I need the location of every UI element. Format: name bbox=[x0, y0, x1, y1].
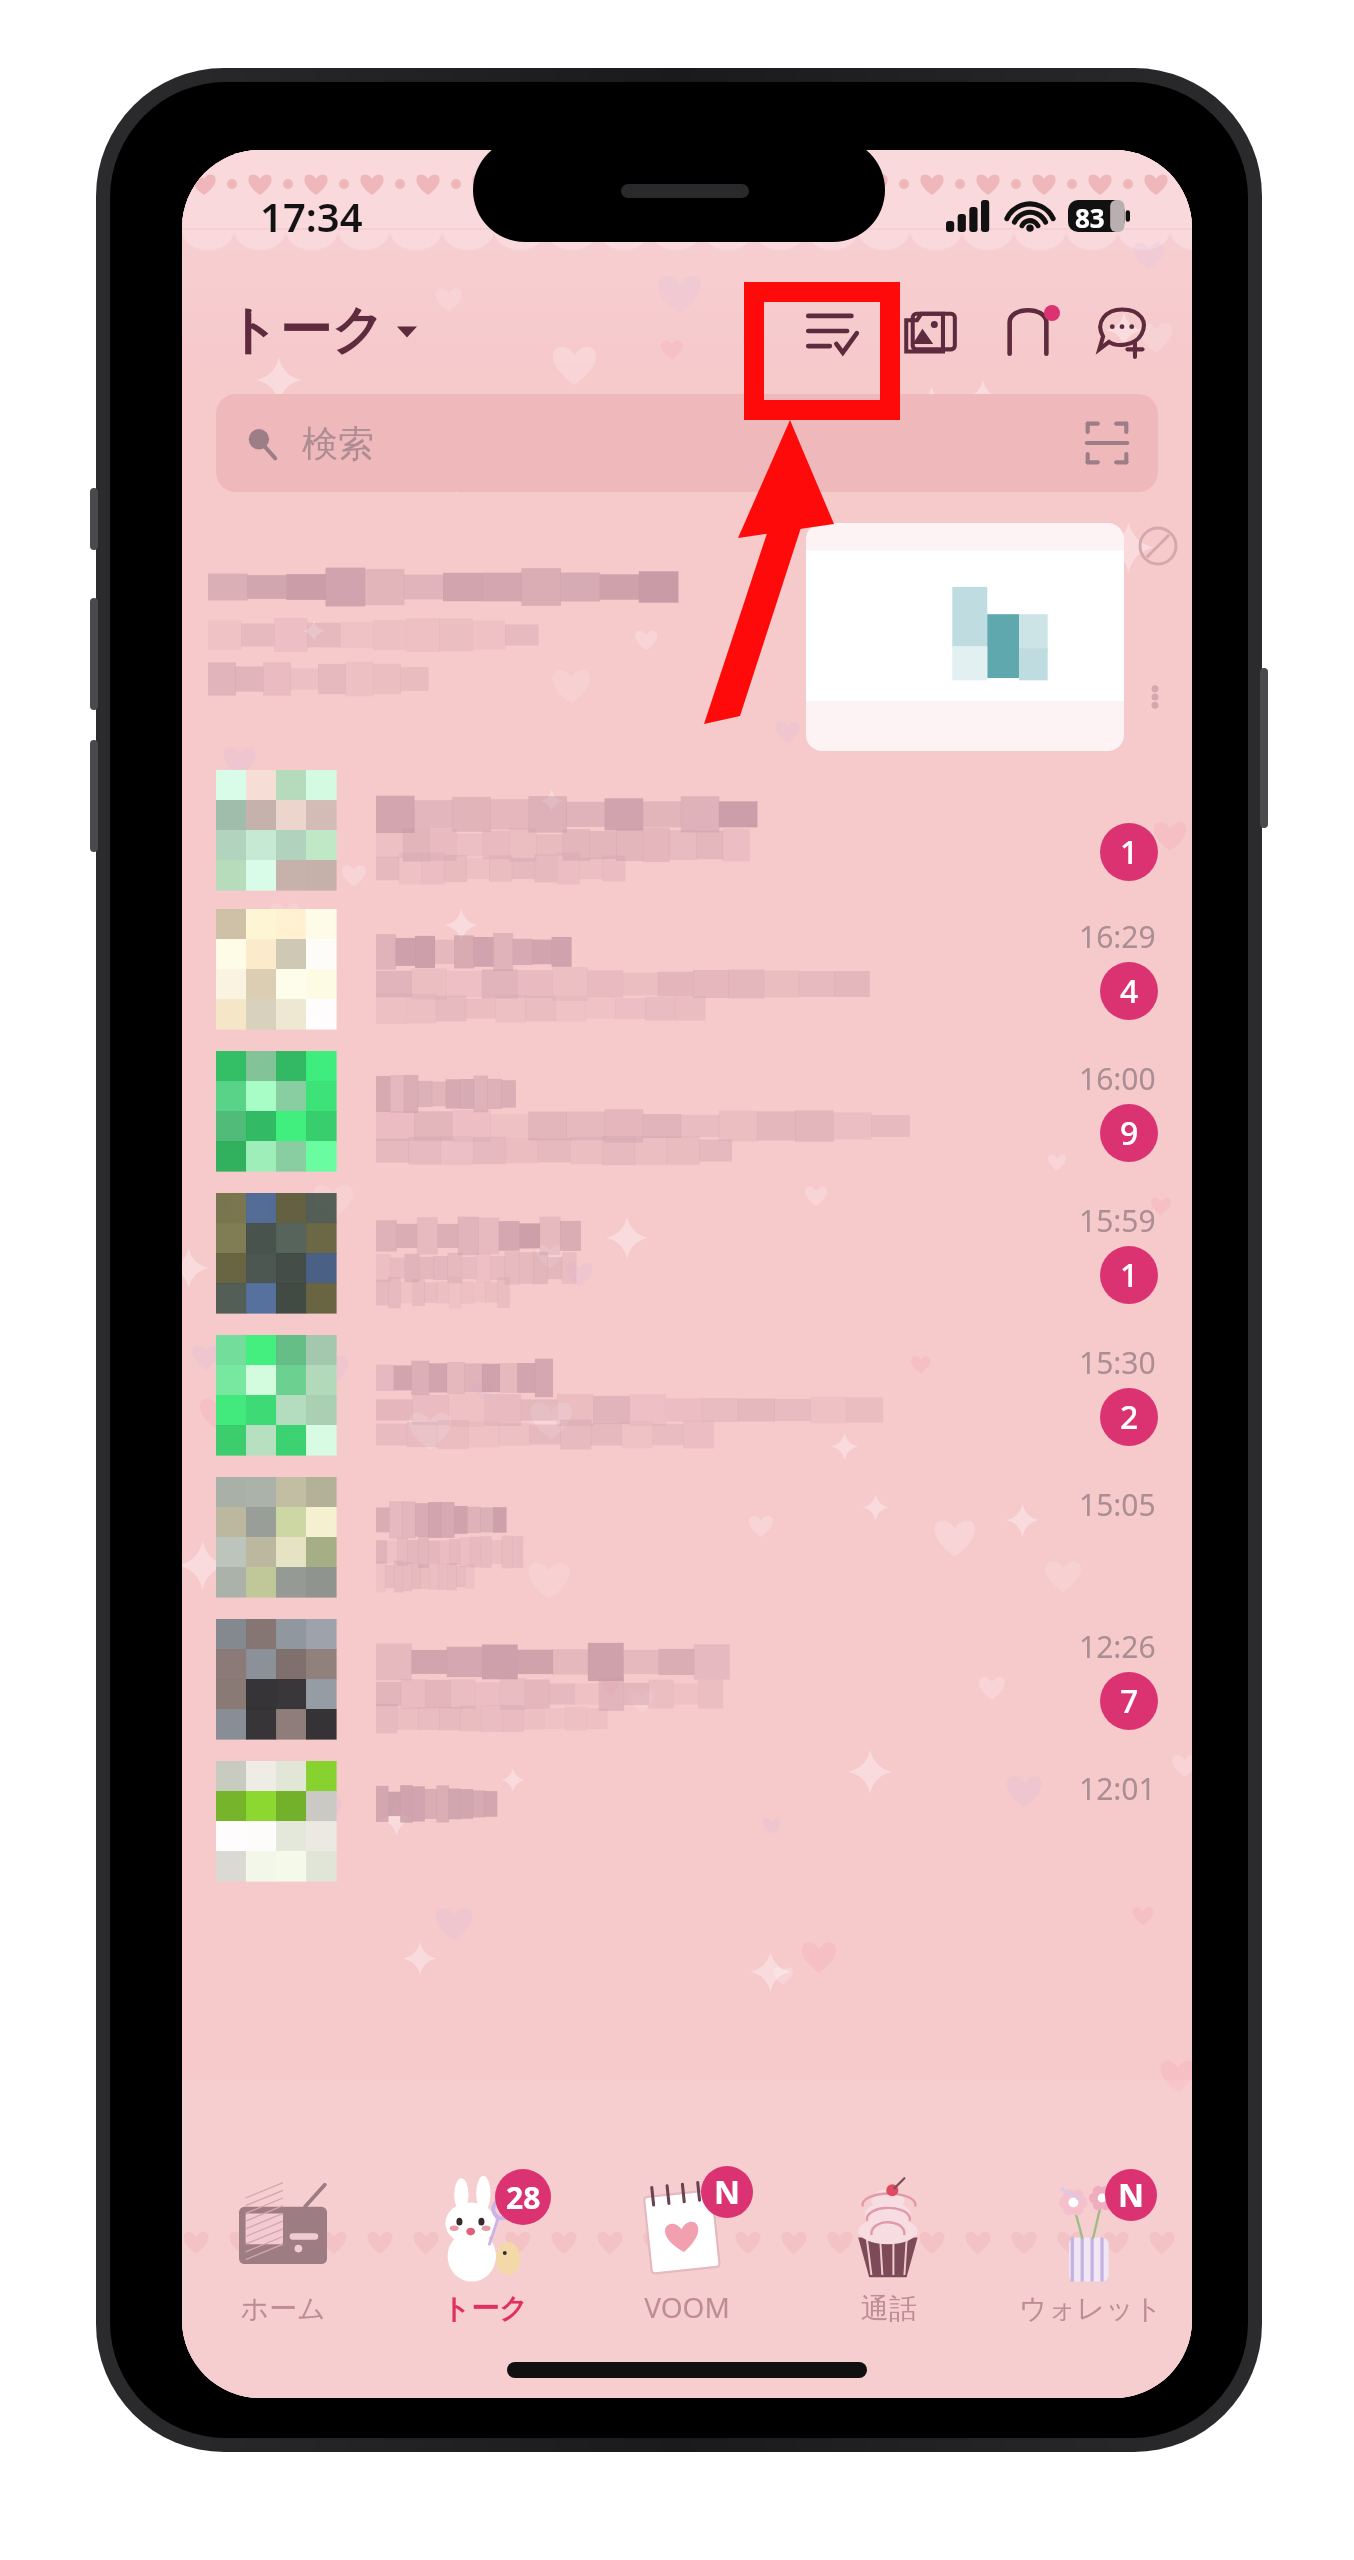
staticText: 通話 bbox=[861, 2291, 917, 2326]
staticText: VOOM bbox=[644, 2288, 730, 2326]
staticText: ウォレット bbox=[1019, 2291, 1163, 2326]
staticText: 15:05 bbox=[1079, 1484, 1156, 1525]
staticText: N bbox=[1118, 2173, 1145, 2217]
staticText: 2 bbox=[1120, 1395, 1139, 1439]
button[interactable]: Hide ad bbox=[1138, 526, 1178, 566]
button[interactable]: Keep memo bbox=[992, 295, 1064, 367]
staticText: 12:01 bbox=[1079, 1768, 1156, 1809]
staticText: 9 bbox=[1120, 1111, 1139, 1155]
button[interactable]: 1 bbox=[182, 762, 1192, 898]
staticText: 16:29 bbox=[1079, 916, 1156, 957]
button[interactable]: 28 bbox=[384, 2130, 586, 2342]
staticText: 15:59 bbox=[1079, 1200, 1156, 1241]
staticText: トーク bbox=[442, 2291, 528, 2326]
staticText: 7 bbox=[1120, 1679, 1139, 1723]
button[interactable]: Albums bbox=[894, 295, 966, 367]
button[interactable] bbox=[806, 523, 1124, 751]
button[interactable]: 12:01 bbox=[182, 1750, 1192, 1892]
button[interactable]: 12:26 bbox=[182, 1608, 1192, 1750]
staticText: 1 bbox=[1120, 830, 1139, 874]
button[interactable]: N bbox=[586, 2130, 788, 2342]
button[interactable]: More options bbox=[1138, 680, 1172, 714]
staticText: 検索 bbox=[302, 421, 374, 466]
button[interactable]: 15:30 bbox=[182, 1324, 1192, 1466]
button[interactable]: 通話 bbox=[788, 2130, 990, 2342]
button[interactable]: ホーム bbox=[182, 2130, 384, 2342]
staticText: 17:34 bbox=[260, 189, 363, 243]
staticText: N bbox=[714, 2170, 741, 2214]
staticText: 28 bbox=[506, 2177, 541, 2218]
button[interactable]: Scan code bbox=[1084, 420, 1130, 466]
button[interactable]: 15:59 bbox=[182, 1182, 1192, 1324]
button[interactable]: 16:00 bbox=[182, 1040, 1192, 1182]
staticText: ホーム bbox=[240, 2291, 326, 2326]
staticText: 15:30 bbox=[1079, 1342, 1156, 1383]
button[interactable]: Select chats bbox=[796, 295, 868, 367]
staticText: 16:00 bbox=[1079, 1058, 1156, 1099]
staticText: 1 bbox=[1120, 1253, 1139, 1297]
staticText: トーク bbox=[226, 298, 385, 364]
button[interactable]: トーク bbox=[226, 298, 427, 364]
button[interactable]: 検索 bbox=[216, 394, 1158, 492]
staticText: 12:26 bbox=[1079, 1626, 1156, 1667]
staticText: 4 bbox=[1120, 969, 1139, 1013]
button[interactable]: N bbox=[990, 2130, 1192, 2342]
button[interactable]: New chat bbox=[1086, 295, 1158, 367]
button[interactable]: 16:29 bbox=[182, 898, 1192, 1040]
button[interactable]: 15:05 bbox=[182, 1466, 1192, 1608]
staticText: 83 bbox=[1075, 200, 1105, 232]
